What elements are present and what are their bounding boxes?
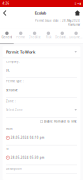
- staticText: Zone :: [6, 99, 16, 103]
- staticText: Sensitive: [6, 88, 18, 92]
- button[interactable]: Back: [0, 8, 10, 18]
- button[interactable]: Declaration: [55, 32, 69, 39]
- staticText: Description: [6, 167, 22, 170]
- staticText: 28-05-2024 04:10 pm: [11, 136, 44, 139]
- staticText: Declaration: [55, 35, 69, 39]
- button[interactable]: Zone :: [3, 98, 80, 117]
- staticText: Ravikumar: [68, 23, 80, 26]
- staticText: Permit Issue date : 28-May-2024: [35, 19, 80, 22]
- button[interactable]: Documents: [69, 32, 83, 39]
- button[interactable]: Enable From and To Time: [3, 117, 80, 125]
- staticText: Documents: [69, 35, 83, 39]
- staticText: ITC: [6, 69, 10, 72]
- staticText: Select Zone: [6, 108, 23, 112]
- staticText: Enable From and To Time: [44, 120, 77, 123]
- button[interactable]: From: [3, 125, 80, 145]
- button[interactable]: Permit: [14, 32, 28, 39]
- button[interactable]: Permit Type :: [3, 78, 80, 98]
- button[interactable]: Permit To Work: [3, 46, 80, 58]
- button[interactable]: To: [3, 145, 80, 165]
- staticText: Checklist: [29, 35, 41, 39]
- staticText: Permit Type :: [6, 79, 24, 83]
- staticText: Risk: [46, 35, 51, 39]
- staticText: 4:26: [3, 2, 10, 5]
- staticText: ⣿ ▾ ▮: [74, 2, 80, 5]
- button[interactable]: General: [0, 32, 14, 39]
- staticText: Ecolab: [35, 10, 47, 16]
- staticText: Permit: [16, 35, 25, 39]
- staticText: Permit To Work: [6, 49, 35, 55]
- staticText: To: [6, 147, 9, 150]
- button[interactable]: Company :: [3, 58, 80, 78]
- staticText: 28-05-2024 05:30 pm: [11, 156, 44, 159]
- button[interactable]: Home: [72, 8, 83, 18]
- staticText: General: [1, 35, 12, 39]
- staticText: Company :: [6, 60, 20, 63]
- button[interactable]: Checklist: [28, 32, 41, 39]
- staticText: From: [6, 127, 12, 131]
- button[interactable]: Risk: [41, 32, 55, 39]
